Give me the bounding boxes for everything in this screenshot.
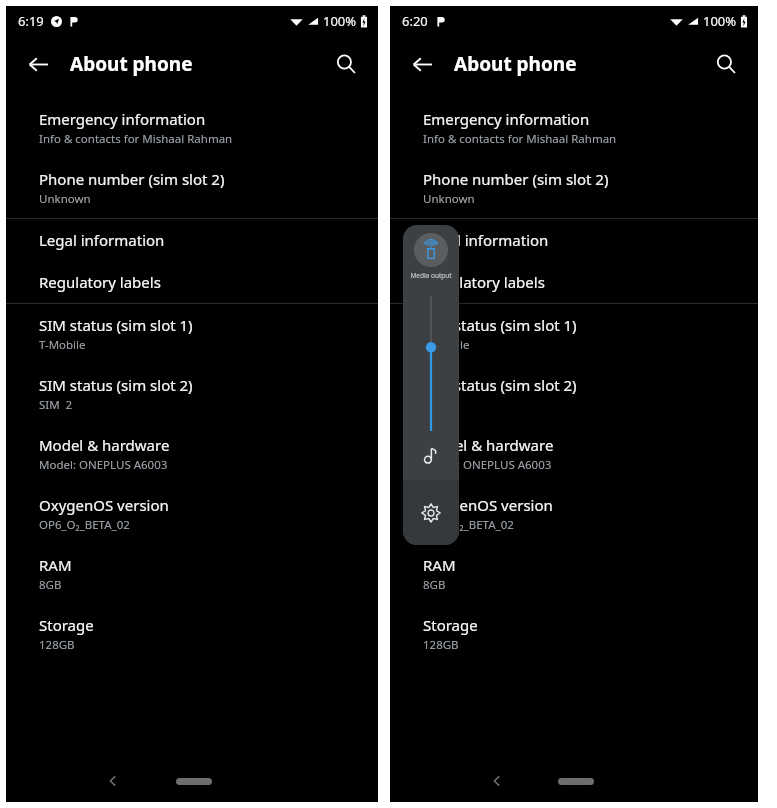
button[interactable]: Storage xyxy=(6,604,378,664)
staticText: SIM 2 xyxy=(39,397,73,413)
staticText: Emergency information xyxy=(39,109,206,129)
staticText: SIM 2 xyxy=(423,397,457,413)
staticText: 128GB xyxy=(423,637,459,653)
staticText: Storage xyxy=(423,615,478,635)
button[interactable]: RAM xyxy=(390,544,758,604)
staticText: About phone xyxy=(70,51,193,77)
button[interactable]: Legal information xyxy=(6,219,378,261)
staticText: Model & hardware xyxy=(423,435,554,455)
staticText: OP6_O₂_BETA_02 xyxy=(39,517,130,533)
staticText: Unknown xyxy=(423,191,475,207)
button[interactable]: Back xyxy=(480,764,514,798)
button[interactable]: SIM status (sim slot 2) xyxy=(390,364,758,424)
button[interactable]: Legal information xyxy=(390,219,758,261)
staticText: OP6_O₂_BETA_02 xyxy=(423,517,514,533)
staticText: Info & contacts for Mishaal Rahman xyxy=(423,131,617,147)
button[interactable]: OxygenOS version xyxy=(6,484,378,544)
staticText: Model & hardware xyxy=(39,435,170,455)
staticText: 6:19 xyxy=(18,12,44,30)
staticText: SIM status (sim slot 1) xyxy=(423,315,577,335)
staticText: 100% xyxy=(703,12,737,30)
staticText: About phone xyxy=(454,51,577,77)
staticText: Info & contacts for Mishaal Rahman xyxy=(39,131,233,147)
staticText: Media output xyxy=(410,271,452,280)
staticText: RAM xyxy=(423,555,456,575)
button[interactable]: Phone number (sim slot 2) xyxy=(6,158,378,218)
staticText: OxygenOS version xyxy=(423,495,553,515)
staticText: T-Mobile xyxy=(423,337,470,353)
staticText: Phone number (sim slot 2) xyxy=(423,169,609,189)
staticText: 8GB xyxy=(423,577,446,593)
button[interactable]: Back xyxy=(16,42,60,86)
button[interactable]: SIM status (sim slot 1) xyxy=(6,304,378,364)
staticText: 128GB xyxy=(39,637,75,653)
staticText: Emergency information xyxy=(423,109,590,129)
button[interactable]: Volume slider xyxy=(403,292,459,480)
staticText: Model: ONEPLUS A6003 xyxy=(423,457,552,473)
staticText: 6:20 xyxy=(402,12,428,30)
button[interactable]: Storage xyxy=(390,604,758,664)
button[interactable]: Model & hardware xyxy=(390,424,758,484)
staticText: Legal information xyxy=(39,230,165,250)
staticText: SIM status (sim slot 2) xyxy=(39,375,193,395)
button[interactable]: Home xyxy=(558,778,594,785)
button[interactable]: SIM status (sim slot 1) xyxy=(390,304,758,364)
staticText: Legal information xyxy=(423,230,549,250)
button[interactable]: Home xyxy=(176,778,212,785)
staticText: SIM status (sim slot 2) xyxy=(423,375,577,395)
staticText: Regulatory labels xyxy=(39,272,161,292)
staticText: Regulatory labels xyxy=(423,272,545,292)
staticText: SIM status (sim slot 1) xyxy=(39,315,193,335)
staticText: OxygenOS version xyxy=(39,495,169,515)
staticText: RAM xyxy=(39,555,72,575)
button[interactable]: Search xyxy=(324,42,368,86)
staticText: Unknown xyxy=(39,191,91,207)
button[interactable]: SIM status (sim slot 2) xyxy=(6,364,378,424)
staticText: Phone number (sim slot 2) xyxy=(39,169,225,189)
button[interactable]: Back xyxy=(400,42,444,86)
button[interactable]: Model & hardware xyxy=(6,424,378,484)
staticText: 100% xyxy=(323,12,357,30)
button[interactable]: RAM xyxy=(6,544,378,604)
button[interactable]: Back xyxy=(96,764,130,798)
staticText: Storage xyxy=(39,615,94,635)
staticText: Model: ONEPLUS A6003 xyxy=(39,457,168,473)
button[interactable]: Emergency information xyxy=(390,98,758,158)
button[interactable]: Settings xyxy=(403,480,459,545)
button[interactable]: Media output xyxy=(403,225,459,292)
button[interactable]: OxygenOS version xyxy=(390,484,758,544)
staticText: 8GB xyxy=(39,577,62,593)
staticText: T-Mobile xyxy=(39,337,86,353)
button[interactable]: Emergency information xyxy=(6,98,378,158)
button[interactable]: Search xyxy=(704,42,748,86)
button[interactable]: Regulatory labels xyxy=(6,261,378,303)
button[interactable]: Phone number (sim slot 2) xyxy=(390,158,758,218)
button[interactable]: Regulatory labels xyxy=(390,261,758,303)
